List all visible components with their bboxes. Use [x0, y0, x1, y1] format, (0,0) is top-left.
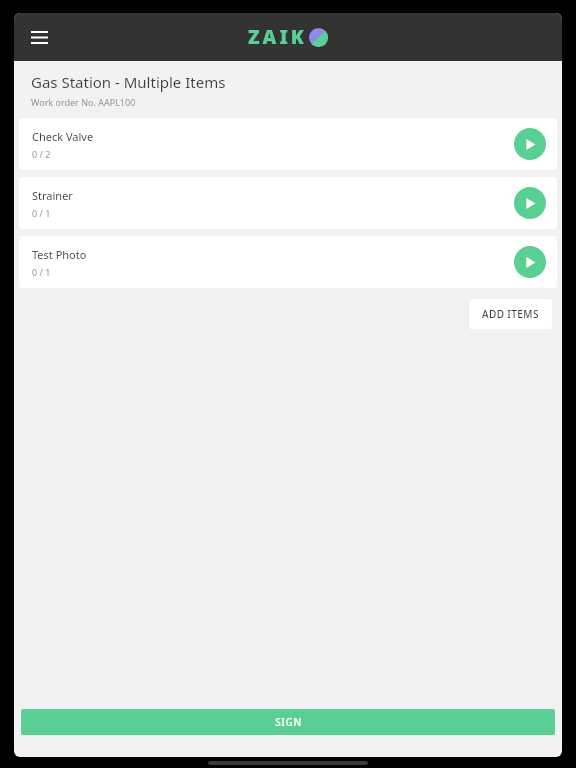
staticText: Test Photo [32, 247, 87, 262]
button[interactable]: Strainer [19, 177, 557, 229]
staticText: ZAIK [248, 24, 307, 50]
staticText: ADD ITEMS [482, 307, 539, 321]
staticText: 0 / 1 [32, 266, 51, 278]
button[interactable]: SIGN [21, 709, 555, 735]
staticText: Check Valve [32, 129, 94, 144]
button[interactable]: Check Valve [19, 118, 557, 170]
button[interactable]: Start Test Photo [514, 246, 546, 278]
staticText: 0 / 2 [32, 148, 51, 160]
button[interactable]: Start Check Valve [514, 128, 546, 160]
button[interactable]: Start Strainer [514, 187, 546, 219]
button[interactable]: Open navigation menu [22, 20, 56, 54]
button[interactable]: Test Photo [19, 236, 557, 288]
staticText: Strainer [32, 188, 73, 203]
staticText: SIGN [275, 715, 302, 729]
button[interactable]: ADD ITEMS [469, 299, 552, 329]
staticText: Gas Station - Multiple Items [31, 72, 226, 92]
staticText: Work order No. AAPL100 [31, 96, 136, 108]
staticText: 0 / 1 [32, 207, 51, 219]
